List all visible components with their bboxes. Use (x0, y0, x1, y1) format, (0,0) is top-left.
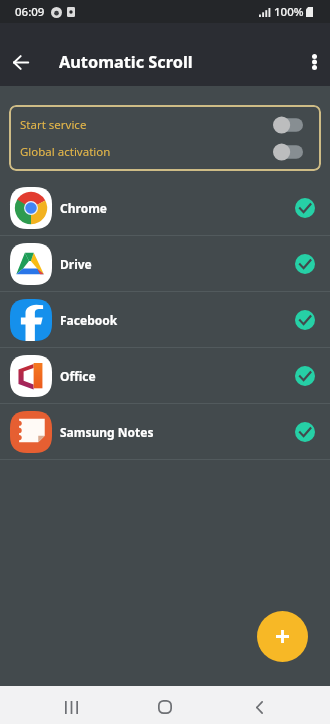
staticText: Samsung Notes (60, 424, 154, 440)
button[interactable]: Back (237, 688, 281, 724)
button[interactable]: Facebook (0, 292, 330, 347)
staticText: Facebook (60, 312, 118, 328)
staticText: 06:09 (15, 4, 45, 20)
staticText: Start service (20, 117, 87, 133)
staticText: Global activation (20, 144, 111, 160)
button[interactable]: Office (0, 348, 330, 403)
button[interactable]: More options (298, 46, 330, 78)
button[interactable]: Add (257, 611, 308, 662)
staticText: Chrome (60, 200, 107, 216)
button[interactable]: Back (5, 46, 37, 78)
staticText: 100% (274, 4, 304, 20)
button[interactable]: Start service (9, 111, 321, 138)
staticText: Automatic Scroll (59, 51, 193, 73)
button[interactable]: Global activation (9, 138, 321, 165)
staticText: Office (60, 368, 96, 384)
button[interactable]: Samsung Notes (0, 404, 330, 459)
button[interactable]: Home (143, 688, 187, 724)
button[interactable]: Chrome (0, 180, 330, 235)
staticText: Drive (60, 256, 92, 272)
button[interactable]: Drive (0, 236, 330, 291)
button[interactable]: Recent apps (49, 688, 93, 724)
